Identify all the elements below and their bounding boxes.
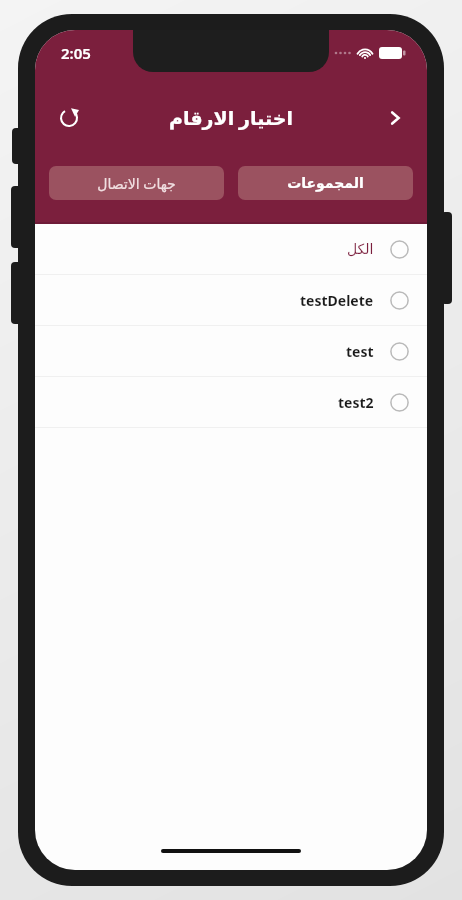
button[interactable]: الكل xyxy=(35,224,427,274)
staticText: اختيار الارقام xyxy=(169,105,293,131)
staticText: testDelete xyxy=(300,291,374,310)
button[interactable]: تحديث xyxy=(47,96,91,140)
button[interactable]: المجموعات xyxy=(238,166,413,200)
staticText: جهات الاتصال xyxy=(97,174,176,193)
button[interactable]: testDelete xyxy=(35,275,427,325)
staticText: test xyxy=(346,342,374,361)
staticText: test2 xyxy=(338,393,374,412)
button[interactable]: جهات الاتصال xyxy=(49,166,224,200)
staticText: 2:05 xyxy=(61,43,91,63)
staticText: الكل xyxy=(347,241,374,257)
button[interactable]: test2 xyxy=(35,377,427,427)
button[interactable]: test xyxy=(35,326,427,376)
staticText: المجموعات xyxy=(287,175,364,191)
button[interactable]: رجوع xyxy=(373,96,417,140)
